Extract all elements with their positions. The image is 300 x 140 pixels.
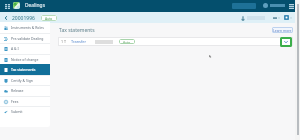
- staticText: 20001996: [12, 15, 35, 22]
- button[interactable]: Account: [263, 3, 268, 8]
- staticText: Tax statements: [59, 27, 95, 34]
- button[interactable]: Notice of change: [0, 54, 50, 65]
- staticText: Submit: [11, 109, 23, 114]
- button[interactable]: Release: [0, 85, 50, 96]
- staticText: Tax statements: [11, 67, 36, 72]
- button[interactable]: A & I: [0, 43, 50, 54]
- staticText: Transfer: [71, 39, 87, 44]
- staticText: T: [64, 39, 66, 44]
- staticText: Instruments & Roles: [11, 25, 44, 30]
- button[interactable]: Learn more: [272, 27, 293, 33]
- button[interactable]: Certify & Sign: [0, 75, 50, 86]
- staticText: Fees: [11, 99, 19, 104]
- button[interactable]: Auto: [41, 15, 57, 21]
- button[interactable]: 1: [58, 37, 293, 46]
- button[interactable]: Tax statements: [0, 64, 50, 75]
- button[interactable]: Submit: [0, 106, 50, 117]
- button[interactable]: Help: [284, 15, 289, 20]
- staticText: Certify & Sign: [11, 78, 33, 83]
- button[interactable]: Back: [3, 15, 9, 21]
- button[interactable]: Pre-validate Dealing: [0, 33, 50, 44]
- staticText: Auto: [123, 40, 131, 44]
- button[interactable]: Home: [13, 2, 20, 9]
- staticText: Dealings: [25, 2, 45, 9]
- button[interactable]: Instruments & Roles: [0, 22, 50, 33]
- staticText: Release: [11, 88, 24, 93]
- staticText: Auto: [45, 16, 53, 20]
- staticText: Learn more: [273, 28, 292, 33]
- button[interactable]: Fees: [0, 96, 50, 107]
- button[interactable]: Notifications: [272, 15, 277, 20]
- button[interactable]: Apps menu: [3, 2, 11, 10]
- button[interactable]: Expand row: [280, 37, 292, 47]
- button[interactable]: More options: [288, 3, 294, 9]
- staticText: Notice of change: [11, 57, 39, 62]
- staticText: Pre-validate Dealing: [11, 36, 44, 41]
- staticText: A & I: [11, 46, 19, 51]
- button[interactable]: User: [240, 15, 245, 20]
- staticText: 1: [61, 39, 64, 44]
